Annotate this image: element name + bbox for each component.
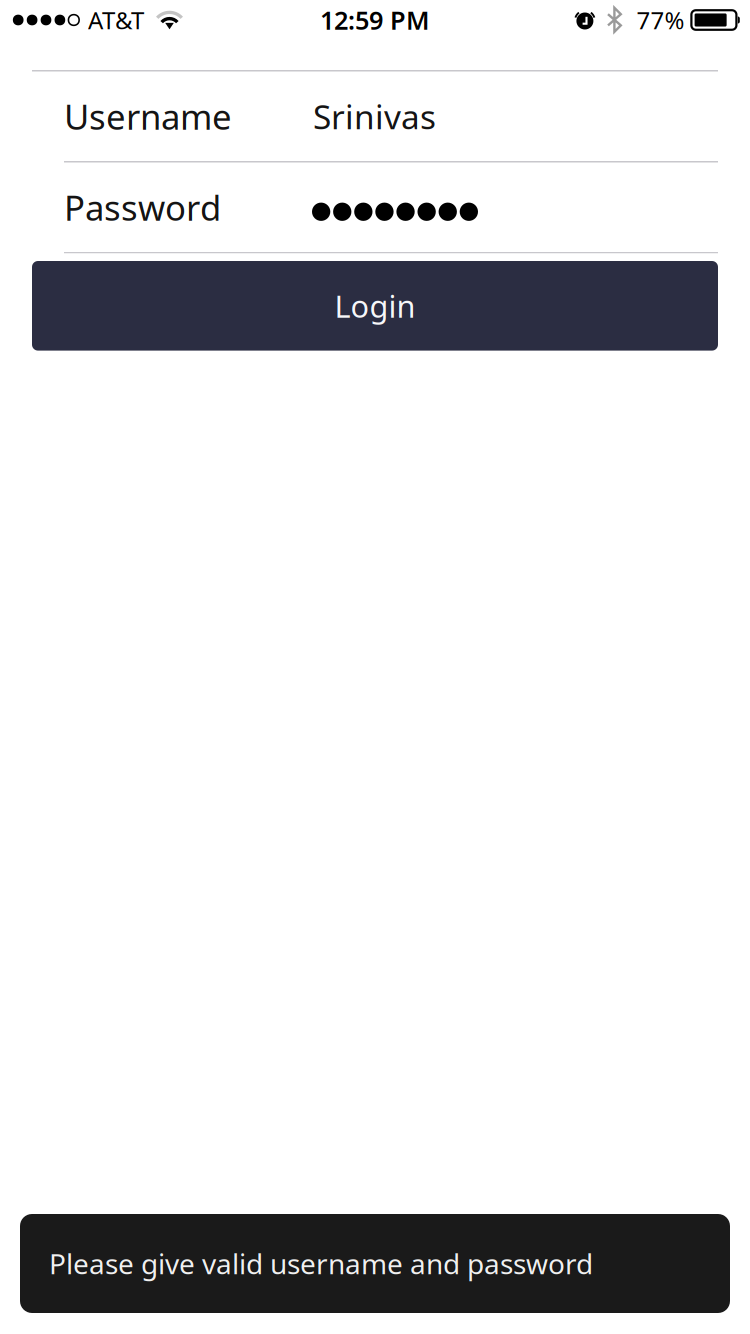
staticText: Srinivas — [313, 94, 436, 138]
staticText: Login — [334, 285, 415, 326]
staticText: AT&T — [88, 4, 144, 36]
staticText: Password — [64, 184, 221, 230]
button[interactable]: Username — [0, 71, 750, 161]
staticText: 77% — [636, 4, 684, 36]
staticText: Please give valid username and password — [49, 1245, 593, 1282]
button[interactable]: Login — [32, 261, 718, 351]
staticText: Username — [64, 93, 232, 139]
button[interactable]: Password — [0, 162, 750, 252]
staticText: 12:59 PM — [320, 3, 430, 37]
